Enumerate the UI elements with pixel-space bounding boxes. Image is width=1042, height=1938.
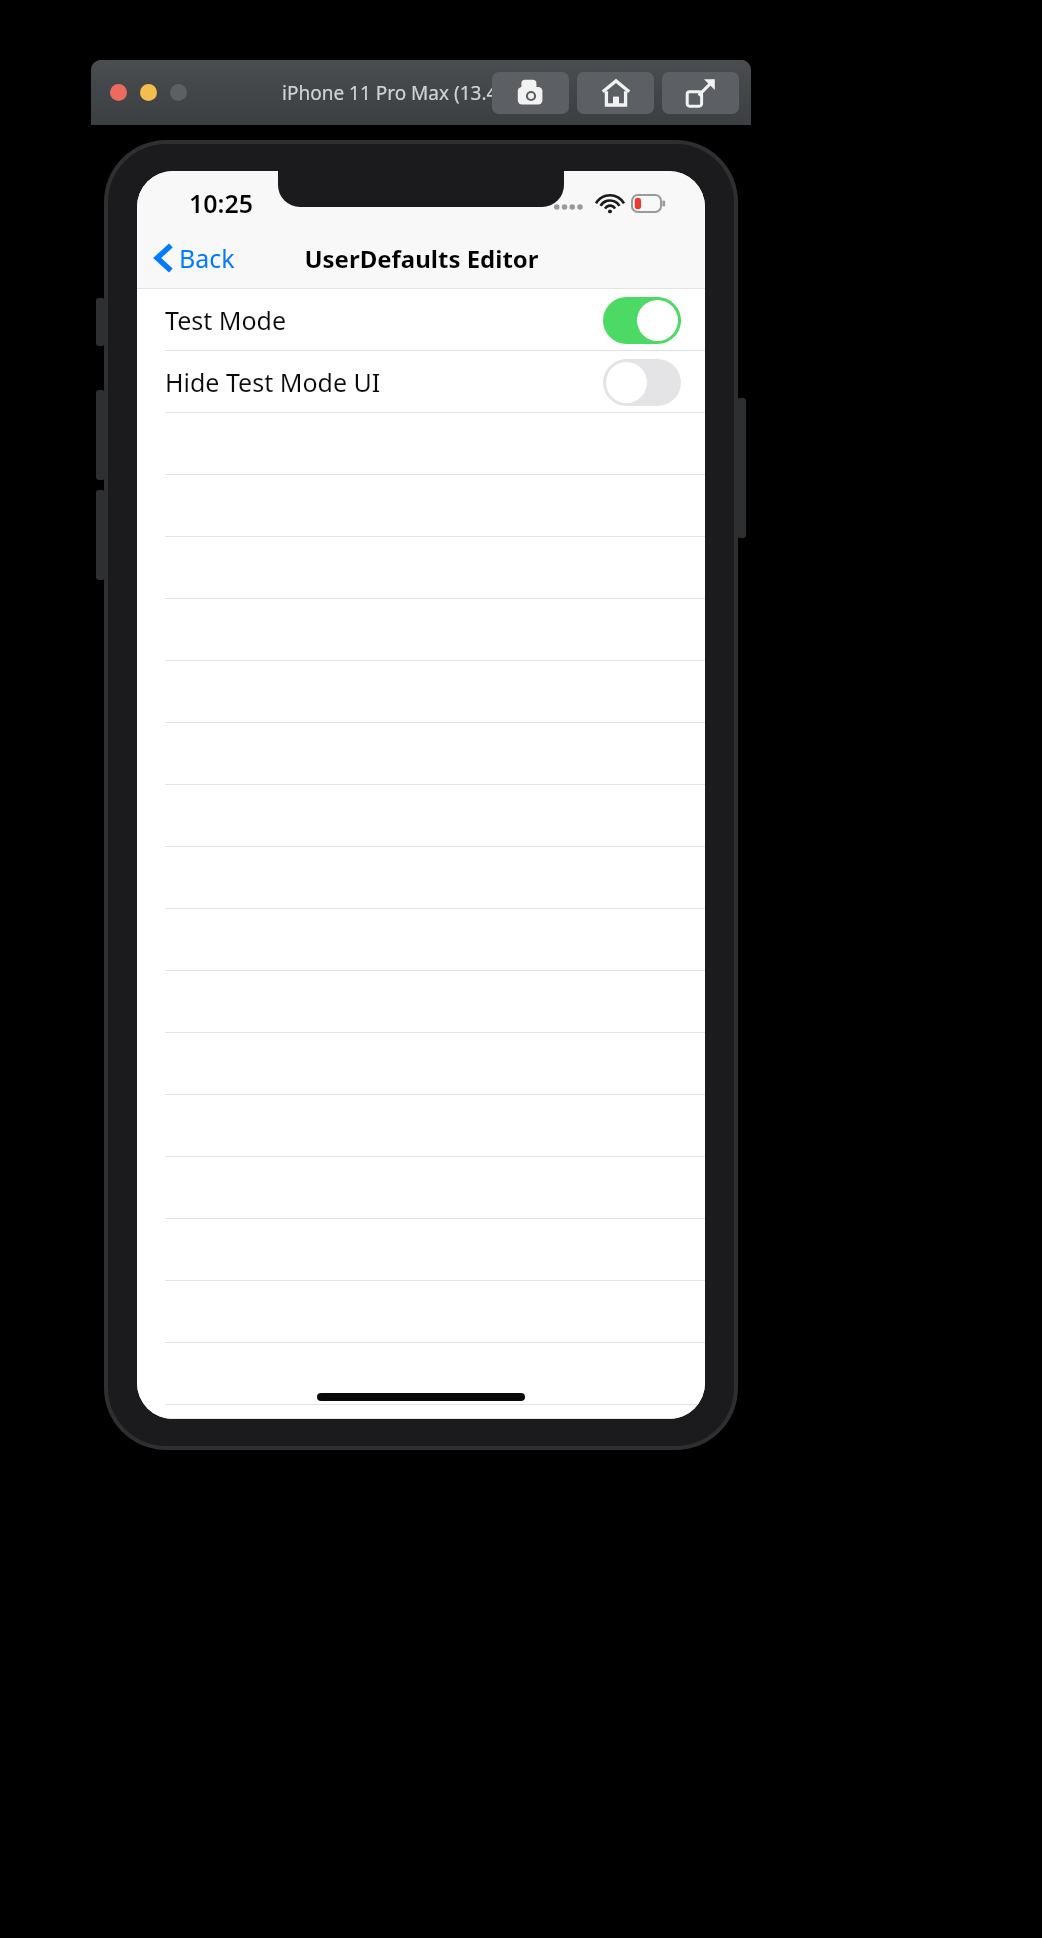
- button[interactable]: Hide Test Mode UI: [137, 351, 705, 413]
- button[interactable]: [137, 413, 705, 475]
- button[interactable]: [137, 847, 705, 909]
- button[interactable]: [137, 1095, 705, 1157]
- button[interactable]: [137, 1281, 705, 1343]
- staticText: Back: [179, 241, 235, 275]
- button[interactable]: Minimize: [140, 84, 157, 101]
- staticText: Hide Test Mode UI: [165, 365, 381, 399]
- button[interactable]: [137, 1033, 705, 1095]
- button[interactable]: [137, 661, 705, 723]
- button[interactable]: [137, 1343, 705, 1405]
- button[interactable]: Screenshot: [492, 72, 569, 114]
- button[interactable]: [137, 599, 705, 661]
- button[interactable]: Back: [137, 227, 247, 289]
- button[interactable]: Rotate: [662, 72, 739, 114]
- button[interactable]: [137, 971, 705, 1033]
- button[interactable]: Off: [603, 359, 681, 406]
- button[interactable]: On: [603, 297, 681, 344]
- button[interactable]: [137, 537, 705, 599]
- staticText: Test Mode: [165, 303, 287, 337]
- staticText: UserDefaults Editor: [304, 242, 539, 275]
- button[interactable]: [137, 1157, 705, 1219]
- button[interactable]: [137, 723, 705, 785]
- staticText: 10:25: [189, 186, 254, 220]
- button[interactable]: [137, 785, 705, 847]
- button[interactable]: [137, 475, 705, 537]
- button[interactable]: [137, 909, 705, 971]
- button[interactable]: [137, 1219, 705, 1281]
- button[interactable]: Test Mode: [137, 289, 705, 351]
- button[interactable]: [137, 1405, 705, 1419]
- button[interactable]: Zoom: [170, 84, 187, 101]
- button[interactable]: Close: [110, 84, 127, 101]
- staticText: iPhone 11 Pro Max (13.4): [282, 80, 504, 106]
- button[interactable]: Home: [577, 72, 654, 114]
